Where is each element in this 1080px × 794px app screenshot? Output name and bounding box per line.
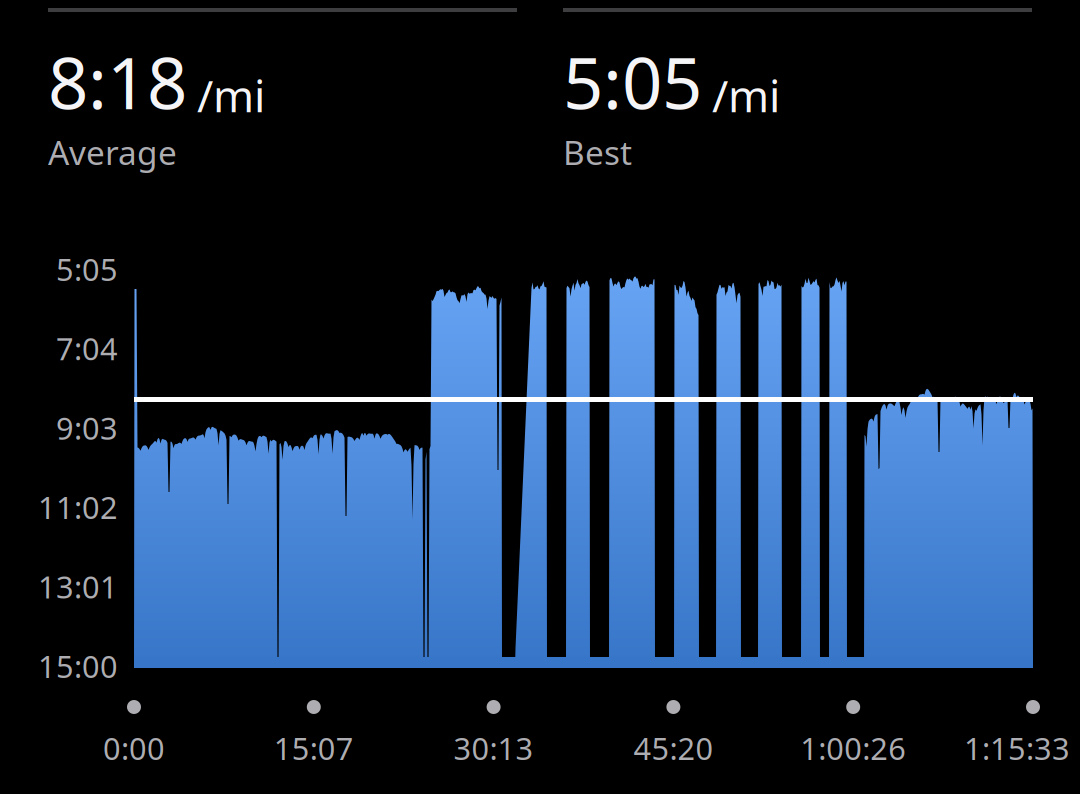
staticText: 0:00 — [103, 728, 165, 768]
staticText: 45:20 — [633, 728, 713, 768]
staticText: Best — [563, 130, 632, 174]
staticText: 9:03 — [56, 407, 118, 448]
staticText: Average — [48, 130, 177, 174]
staticText: 1:15:33 — [964, 728, 1070, 768]
staticText: /mi — [712, 66, 780, 124]
staticText: 15:07 — [274, 728, 354, 768]
staticText: 30:13 — [454, 728, 534, 768]
staticText: 15:00 — [38, 646, 118, 686]
staticText: 11:02 — [38, 487, 118, 527]
staticText: 5:05 — [563, 35, 702, 129]
staticText: /mi — [197, 66, 265, 124]
staticText: 5:05 — [56, 249, 118, 289]
staticText: 1:00:26 — [800, 728, 906, 768]
staticText: 13:01 — [38, 566, 118, 607]
staticText: 8:18 — [48, 35, 187, 129]
staticText: 7:04 — [56, 328, 118, 369]
